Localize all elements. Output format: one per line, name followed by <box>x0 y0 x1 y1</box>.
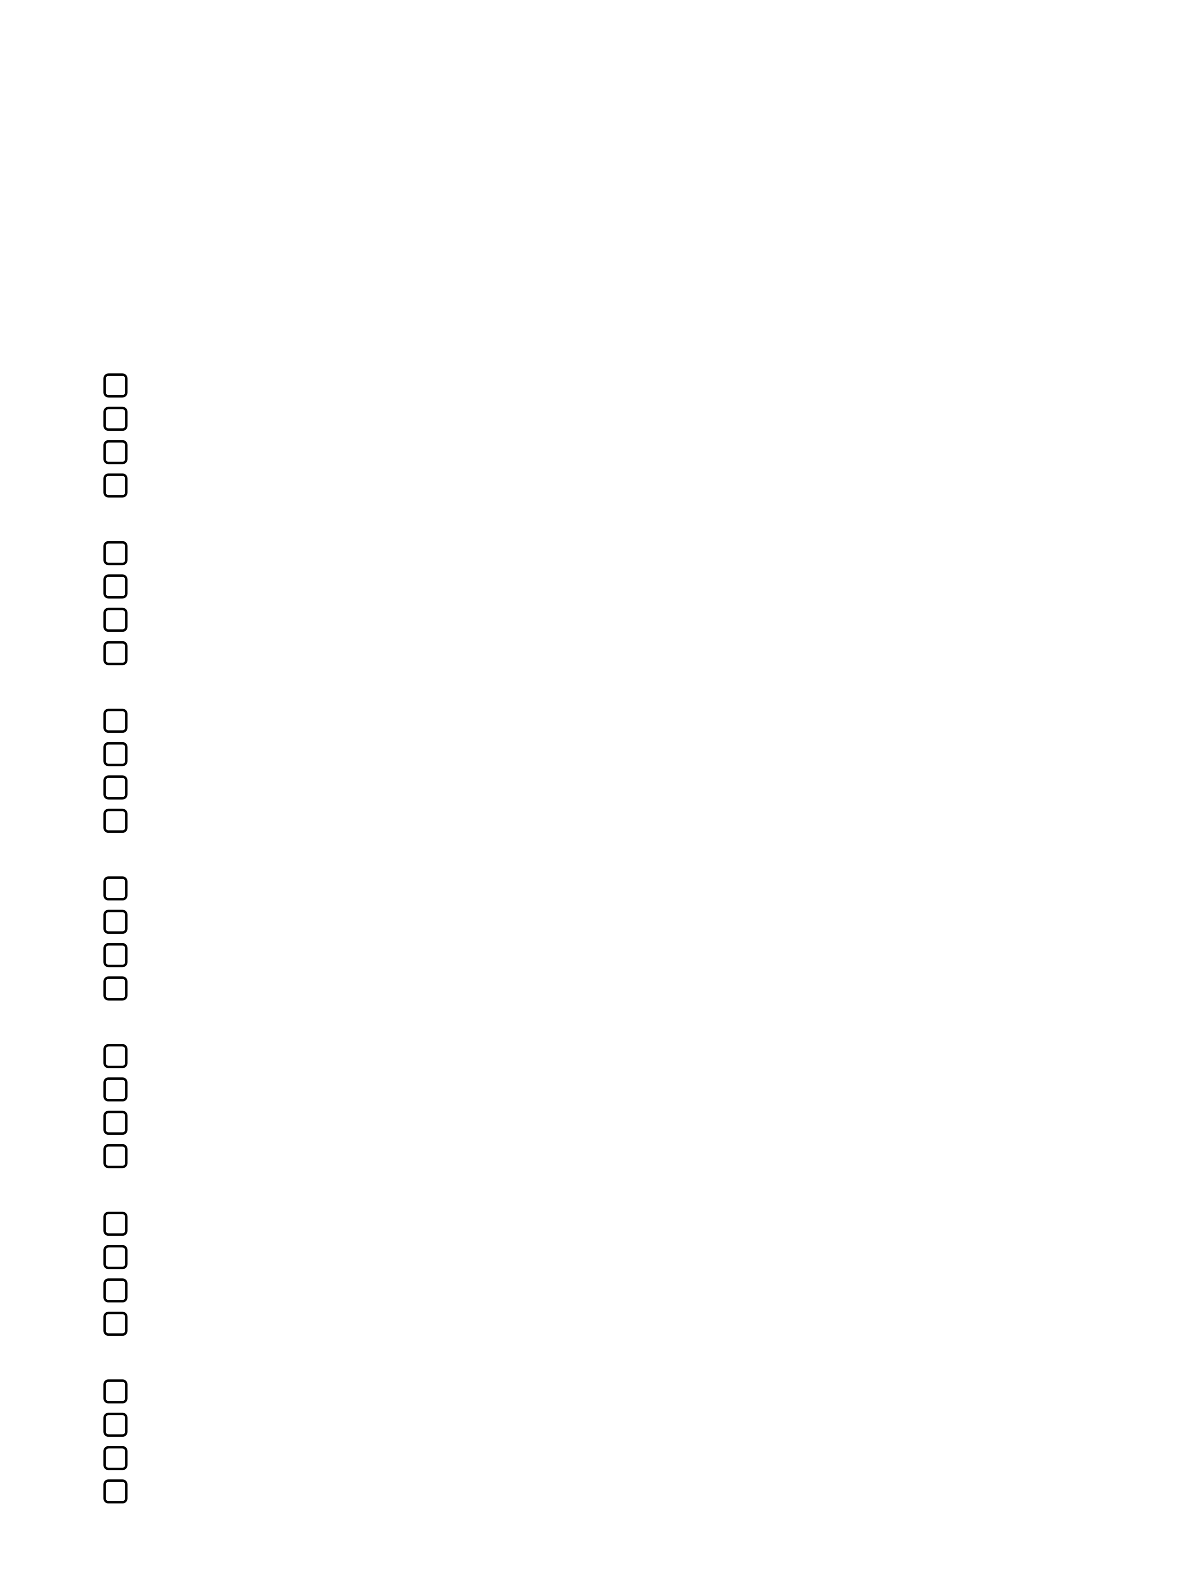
button[interactable]: Sent <box>100 470 131 501</box>
button[interactable]: Scan <box>100 873 131 904</box>
button[interactable]: Inbox <box>100 437 131 468</box>
button[interactable]: Calendar <box>100 403 131 434</box>
button[interactable]: Alerts <box>100 571 131 602</box>
button[interactable]: Day <box>100 1409 131 1440</box>
button[interactable]: Weather <box>100 1443 131 1473</box>
button[interactable]: Documents <box>100 739 131 770</box>
button[interactable]: Climate <box>100 1476 131 1507</box>
button[interactable]: Orders <box>100 1107 131 1138</box>
button[interactable]: Walk <box>100 1308 131 1339</box>
button[interactable]: Tags <box>100 805 131 836</box>
button[interactable]: New Folder <box>100 772 131 803</box>
button[interactable]: Privacy <box>100 638 131 669</box>
button[interactable]: Cart <box>100 1041 131 1071</box>
button[interactable]: Reports <box>100 705 131 736</box>
button[interactable]: Rides <box>100 1275 131 1306</box>
button[interactable]: Payments <box>100 1074 131 1105</box>
button[interactable]: Rewards <box>100 1141 131 1172</box>
button[interactable]: Map <box>100 1208 131 1239</box>
button[interactable]: Navigate <box>100 1242 131 1272</box>
button[interactable]: Profile <box>100 538 131 569</box>
button[interactable]: Preferences <box>100 604 131 635</box>
button[interactable]: Record <box>100 906 131 937</box>
button[interactable]: Video <box>100 973 131 1004</box>
button[interactable]: Audio <box>100 940 131 971</box>
button[interactable]: Home <box>100 370 131 401</box>
button[interactable]: Night <box>100 1376 131 1407</box>
